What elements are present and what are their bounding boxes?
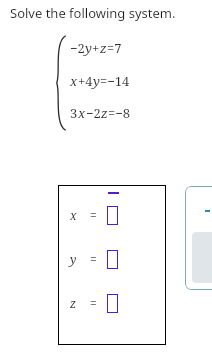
- staticText: z: [100, 39, 107, 57]
- staticText: =: [90, 207, 97, 223]
- button[interactable]: Enter value for x: [107, 206, 118, 225]
- staticText: z: [70, 295, 77, 311]
- staticText: x: [78, 104, 86, 122]
- staticText: x: [70, 72, 78, 90]
- staticText: =−14: [100, 72, 130, 90]
- button[interactable]: Enter value for y: [107, 250, 118, 269]
- staticText: +: [92, 39, 100, 57]
- staticText: x: [70, 207, 77, 223]
- button[interactable]: Enter value for z: [107, 294, 118, 313]
- staticText: Solve the following system.: [10, 4, 176, 22]
- staticText: =−8: [108, 104, 131, 122]
- button[interactable]: Answer option card: [185, 186, 212, 290]
- staticText: y: [85, 39, 92, 57]
- staticText: −2: [86, 104, 101, 122]
- staticText: =: [90, 251, 97, 267]
- staticText: y: [70, 251, 77, 267]
- staticText: =: [90, 295, 97, 311]
- staticText: =7: [107, 39, 122, 57]
- staticText: +4: [78, 72, 93, 90]
- staticText: z: [101, 104, 108, 122]
- staticText: y: [93, 72, 100, 90]
- staticText: 3: [70, 104, 78, 122]
- staticText: −2: [70, 39, 85, 57]
